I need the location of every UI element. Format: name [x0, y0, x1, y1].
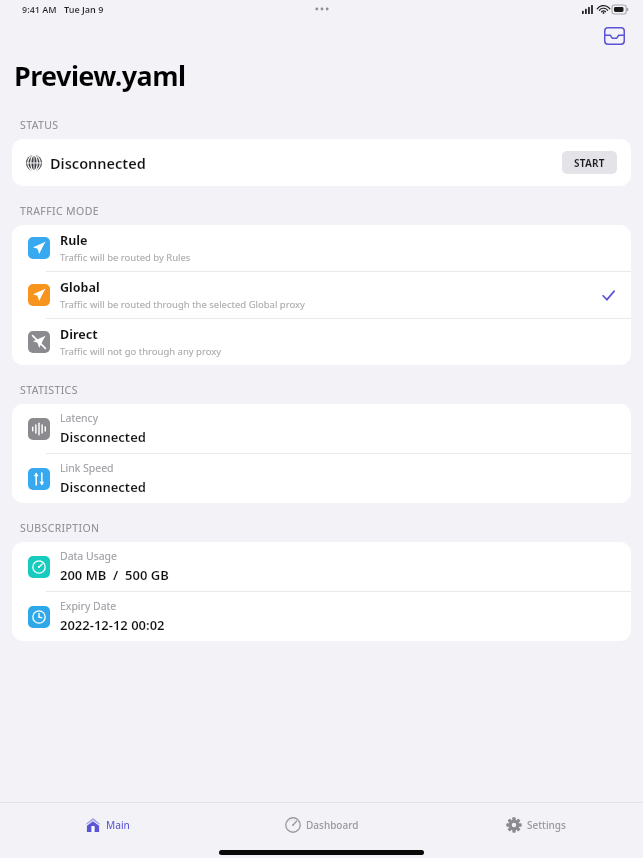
staticText: Link Speed: [60, 461, 114, 475]
button[interactable]: Link Speed: [12, 454, 631, 503]
staticText: STATISTICS: [20, 383, 78, 397]
staticText: SUBSCRIPTION: [20, 521, 100, 535]
staticText: Expiry Date: [60, 599, 117, 613]
button[interactable]: Latency: [12, 404, 631, 453]
button[interactable]: Data Usage: [12, 542, 631, 591]
staticText: 2022-12-12 00:02: [60, 616, 165, 634]
staticText: Latency: [60, 411, 98, 425]
staticText: Tue Jan 9: [64, 3, 104, 15]
staticText: Dashboard: [306, 818, 359, 832]
button[interactable]: Dashboard: [215, 803, 429, 847]
staticText: Direct: [60, 326, 98, 343]
button[interactable]: Settings: [429, 803, 643, 847]
staticText: Disconnected: [60, 428, 146, 446]
button[interactable]: Global: [12, 272, 631, 318]
staticText: TRAFFIC MODE: [20, 204, 99, 218]
staticText: Traffic will be routed by Rules: [60, 251, 191, 264]
staticText: Rule: [60, 232, 88, 249]
button[interactable]: Main: [0, 803, 215, 847]
staticText: Global: [60, 279, 100, 296]
staticText: 9:41 AM: [22, 3, 57, 15]
staticText: Preview.yaml: [14, 57, 186, 94]
button[interactable]: Inbox: [596, 18, 632, 54]
staticText: Main: [106, 818, 130, 832]
staticText: Traffic will not go through any proxy: [60, 345, 222, 358]
button[interactable]: Disconnected: [12, 139, 631, 186]
staticText: Disconnected: [60, 478, 146, 496]
staticText: STATUS: [20, 118, 59, 132]
button[interactable]: Direct: [12, 319, 631, 365]
staticText: Settings: [527, 818, 566, 832]
staticText: Disconnected: [50, 153, 146, 173]
staticText: Data Usage: [60, 549, 117, 563]
button[interactable]: Rule: [12, 225, 631, 271]
staticText: 200 MB / 500 GB: [60, 566, 169, 584]
staticText: START: [574, 156, 605, 170]
staticText: Traffic will be routed through the selec…: [60, 298, 305, 311]
button[interactable]: Expiry Date: [12, 592, 631, 641]
button[interactable]: START: [562, 151, 617, 174]
